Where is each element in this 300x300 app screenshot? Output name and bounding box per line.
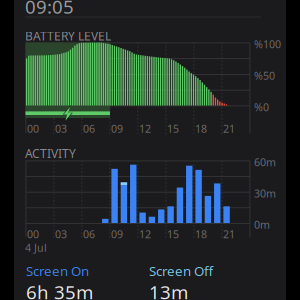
staticText: 13m — [149, 280, 188, 300]
staticText: 03 — [55, 121, 67, 136]
staticText: 09 — [111, 227, 123, 241]
staticText: 09 — [111, 121, 123, 136]
staticText: 06 — [83, 121, 95, 136]
staticText: 09:05 — [25, 0, 74, 19]
staticText: 15 — [167, 121, 179, 136]
staticText: 15 — [167, 227, 179, 241]
staticText: 00 — [27, 121, 39, 136]
staticText: 4 Jul — [25, 240, 47, 255]
staticText: Screen On — [26, 262, 89, 280]
staticText: 18 — [195, 227, 207, 241]
staticText: Screen Off — [149, 262, 213, 280]
staticText: 6h 35m — [26, 280, 93, 300]
staticText: BATTERY LEVEL — [25, 28, 111, 44]
staticText: 00 — [27, 227, 39, 241]
staticText: 12 — [139, 227, 151, 241]
staticText: 06 — [83, 227, 95, 241]
staticText: 21 — [223, 227, 235, 241]
staticText: 60m — [254, 155, 276, 169]
staticText: 12 — [139, 121, 151, 136]
staticText: %100 — [254, 37, 281, 51]
staticText: 0m — [254, 217, 270, 232]
staticText: ACTIVITY — [25, 145, 76, 161]
staticText: %50 — [254, 68, 275, 83]
staticText: 30m — [254, 186, 276, 200]
staticText: 18 — [195, 121, 207, 136]
staticText: %0 — [254, 100, 269, 114]
staticText: 03 — [55, 227, 67, 241]
staticText: 21 — [223, 121, 235, 136]
